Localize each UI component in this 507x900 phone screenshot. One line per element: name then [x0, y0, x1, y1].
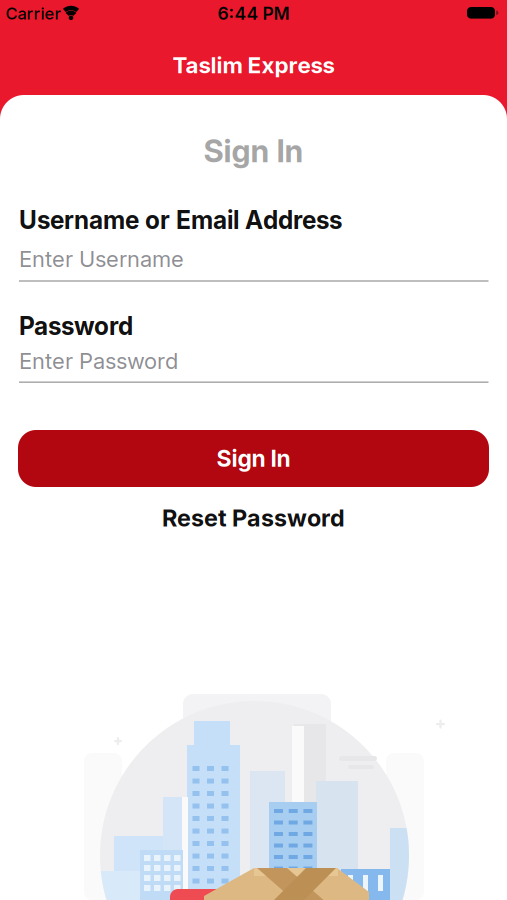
- button[interactable]: Sign In: [18, 430, 489, 487]
- staticText: Enter Password: [19, 348, 178, 374]
- staticText: Username or Email Address: [19, 205, 342, 235]
- button[interactable]: Username: [0, 237, 507, 286]
- staticText: Sign In: [216, 445, 290, 472]
- staticText: 6:44 PM: [217, 3, 289, 24]
- staticText: Reset Password: [162, 504, 345, 532]
- staticText: Taslim Express: [172, 51, 334, 79]
- staticText: Carrier: [5, 3, 60, 23]
- staticText: Password: [19, 311, 133, 341]
- button[interactable]: Reset Password: [162, 504, 345, 532]
- button[interactable]: Password: [0, 339, 507, 387]
- staticText: Sign In: [203, 132, 303, 170]
- staticText: Enter Username: [19, 246, 184, 272]
